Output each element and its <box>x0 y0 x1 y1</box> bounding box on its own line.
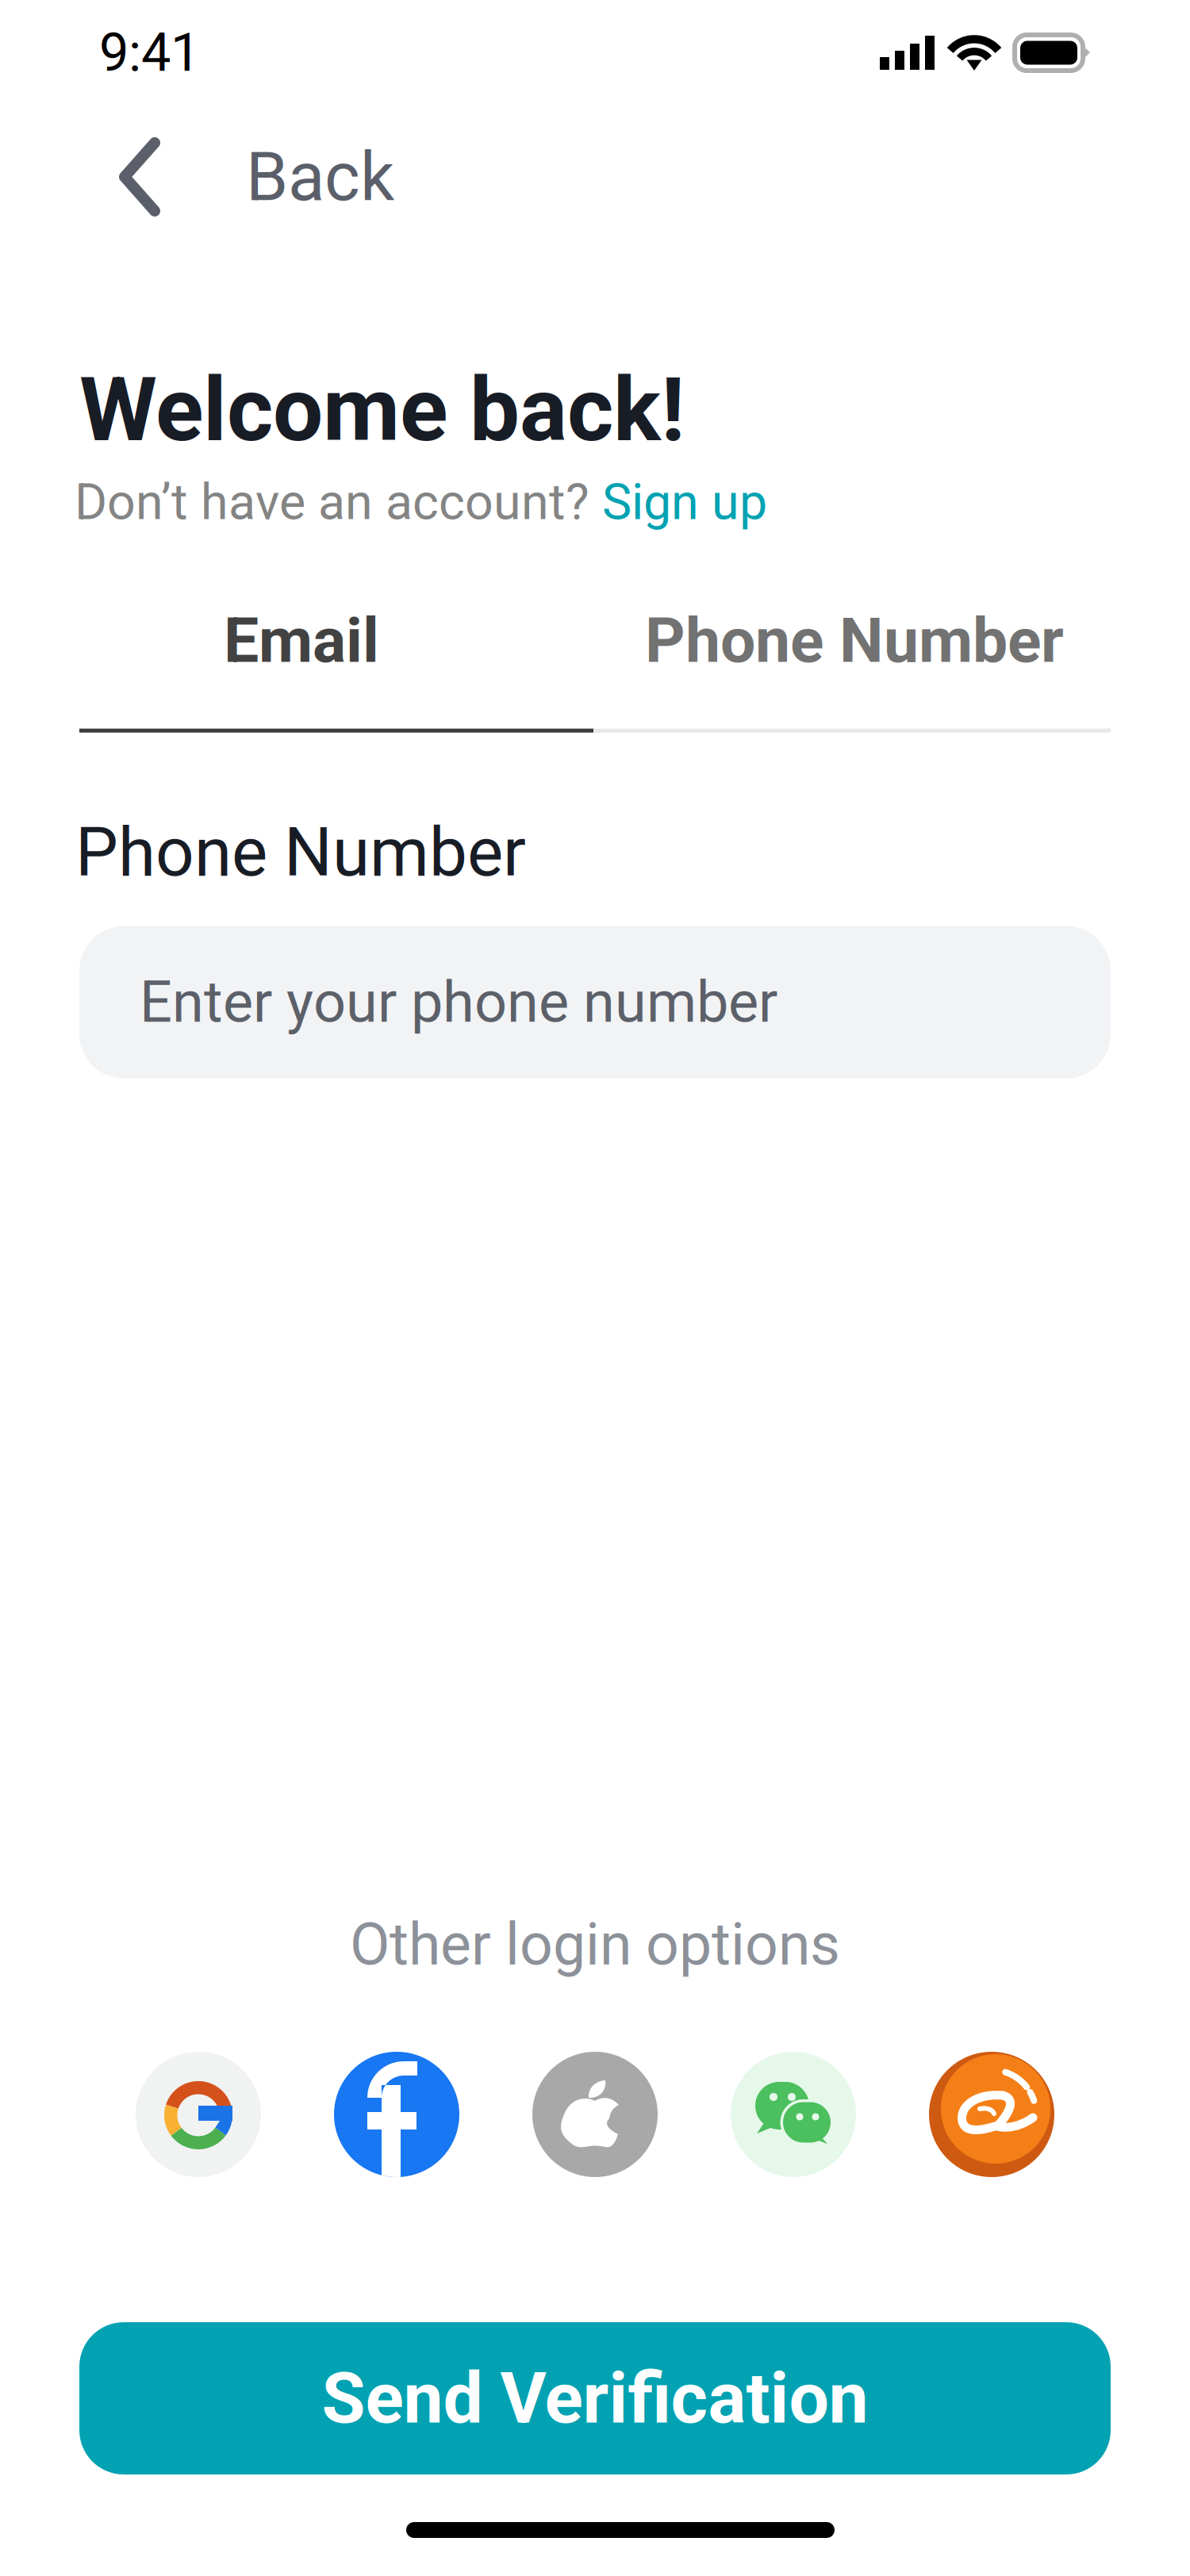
button[interactable]: Continue with Apple <box>532 2052 658 2177</box>
staticText: Back <box>246 137 394 217</box>
staticText: Other login options <box>350 1911 840 1979</box>
button[interactable]: Sign up <box>602 473 767 531</box>
staticText: Enter your phone number <box>140 969 777 1036</box>
staticText: Phone Number <box>645 604 1064 677</box>
button[interactable]: Continue with Google <box>136 2052 261 2177</box>
button[interactable]: Back <box>0 137 394 217</box>
button[interactable]: Send Verification <box>79 2322 1111 2474</box>
staticText: Phone Number <box>75 813 526 892</box>
staticText: 9:41 <box>99 22 200 84</box>
staticText: Welcome back! <box>79 358 685 462</box>
staticText: Sign up <box>602 473 767 531</box>
button[interactable]: Email <box>79 604 512 677</box>
button[interactable]: Phone Number <box>512 604 1111 677</box>
staticText: Email <box>224 604 379 677</box>
button[interactable]: Continue with Facebook <box>334 2052 459 2177</box>
staticText: Don’t have an account? <box>75 473 602 531</box>
staticText: Send Verification <box>322 2357 868 2440</box>
button[interactable]: Continue with Alibaba <box>929 2052 1054 2177</box>
button[interactable]: Continue with WeChat <box>731 2052 856 2177</box>
